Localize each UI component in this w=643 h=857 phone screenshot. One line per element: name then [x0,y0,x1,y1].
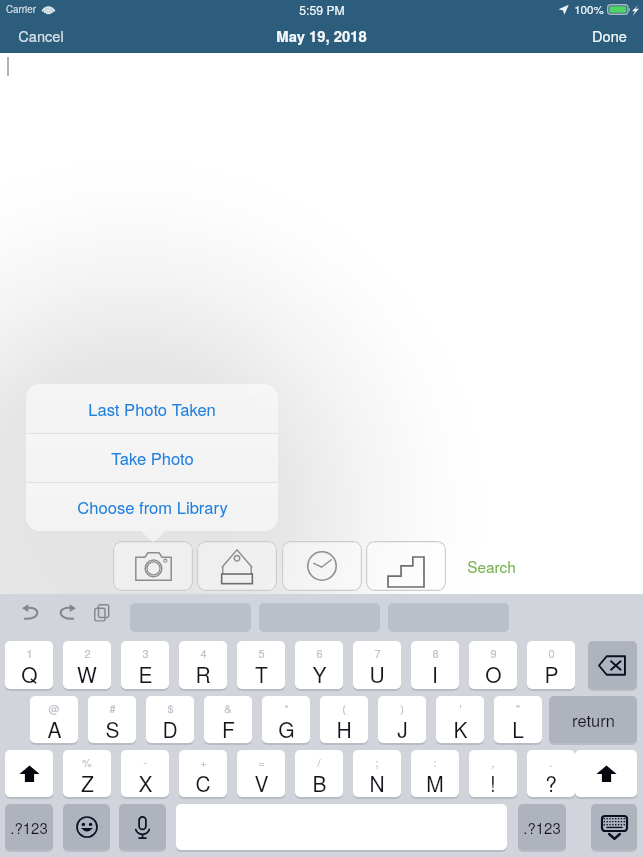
staticText: Search [467,555,516,577]
button[interactable]: / [295,750,343,797]
staticText: 5 [258,645,265,661]
button[interactable]: 4 [179,641,227,689]
button[interactable]: Numbers [5,804,53,850]
button[interactable]: ( [320,696,368,743]
staticText: L [512,714,524,743]
staticText: 8 [432,645,439,661]
button[interactable]: ) [378,696,426,743]
button[interactable]: , [469,750,517,797]
staticText: Done [592,25,627,46]
button[interactable]: & [204,696,252,743]
button[interactable]: + [179,750,227,797]
staticText: R [195,659,211,689]
button[interactable]: Home [197,541,277,591]
button[interactable]: Shift [5,750,53,797]
button[interactable]: Hide keyboard [591,804,637,850]
button[interactable]: 6 [295,641,343,689]
staticText: A [47,714,62,743]
button[interactable]: # [88,696,136,743]
button[interactable]: 7 [353,641,401,689]
staticText: F [222,714,235,743]
button[interactable]: . [527,750,575,797]
staticText: Q [21,659,38,689]
button[interactable]: 0 [527,641,575,689]
staticText: N [369,768,385,797]
button[interactable]: Cancel [0,19,82,52]
staticText: , [491,754,495,770]
button[interactable]: Dictation [119,804,166,850]
button[interactable]: ' [436,696,484,743]
staticText: J [397,714,408,743]
button[interactable]: Redo [51,598,81,626]
button[interactable]: Stairs [366,541,446,591]
staticText: = [258,754,265,770]
button[interactable]: Done [576,19,643,52]
button[interactable]: Search [461,551,522,581]
button[interactable]: Emoji [63,804,110,850]
staticText: ( [342,700,346,716]
button[interactable]: @ [30,696,78,743]
button[interactable]: Camera [113,541,193,591]
staticText: .?123 [523,817,561,838]
staticText: & [224,700,232,716]
staticText: Z [81,768,94,797]
button[interactable]: 9 [469,641,517,689]
button[interactable]: " [494,696,542,743]
staticText: Carrier [6,2,36,16]
staticText: $ [167,700,174,716]
staticText: 0 [548,645,555,661]
button[interactable]: % [63,750,111,797]
button[interactable]: 8 [411,641,459,689]
button[interactable]: Take Photo [26,434,278,482]
button[interactable]: Clock [282,541,362,591]
button[interactable]: ; [353,750,401,797]
staticText: @ [48,700,60,716]
staticText: % [82,754,92,770]
staticText: " [516,700,520,716]
button[interactable]: * [262,696,310,743]
staticText: ; [375,754,379,770]
button[interactable]: Last Photo Taken [26,384,278,433]
staticText: ' [459,700,462,716]
button[interactable]: 5 [237,641,285,689]
staticText: 1 [26,645,33,661]
button[interactable]: Paste [86,598,116,626]
button[interactable]: Numbers [518,804,566,850]
button[interactable]: $ [146,696,194,743]
button[interactable]: 1 [5,641,53,689]
staticText: X [138,768,153,797]
staticText: H [336,714,352,743]
staticText: 9 [490,645,497,661]
staticText: ? [545,768,557,797]
staticText: W [77,659,97,689]
staticText: - [143,754,147,770]
staticText: * [284,700,289,716]
button[interactable]: Undo [16,598,46,626]
staticText: 7 [374,645,381,661]
staticText: 2 [84,645,91,661]
staticText: 5:59 PM [299,1,345,18]
button[interactable]: : [411,750,459,797]
button[interactable]: Return [549,696,637,743]
staticText: B [312,768,327,797]
staticText: K [453,714,468,743]
staticText: + [200,754,207,770]
staticText: V [254,768,269,797]
button[interactable]: Choose from Library [26,483,278,531]
button[interactable]: 3 [121,641,169,689]
button[interactable]: - [121,750,169,797]
staticText: # [109,700,116,716]
staticText: . [549,754,553,770]
button[interactable]: 2 [63,641,111,689]
staticText: Cancel [18,25,64,46]
staticText: return [572,708,615,732]
button[interactable]: Backspace [588,641,637,689]
staticText: 3 [142,645,149,661]
button[interactable]: = [237,750,285,797]
button[interactable]: Shift [575,750,637,797]
staticText: 100% [574,1,604,18]
